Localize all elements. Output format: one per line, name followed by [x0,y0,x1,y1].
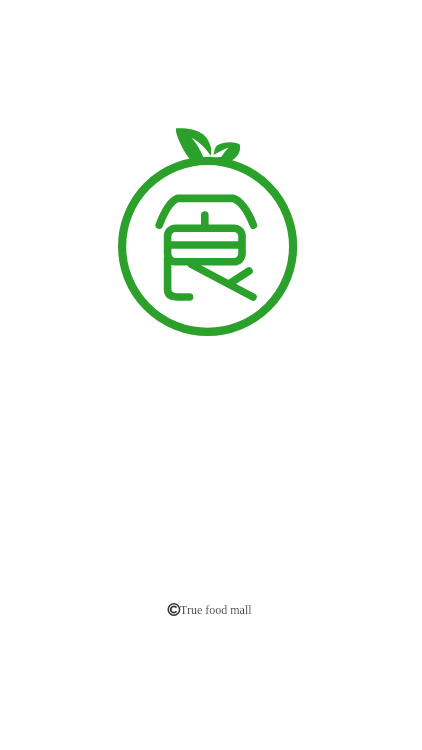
button[interactable]: True food mall [167,601,252,618]
staticText: True food mall [180,603,252,616]
